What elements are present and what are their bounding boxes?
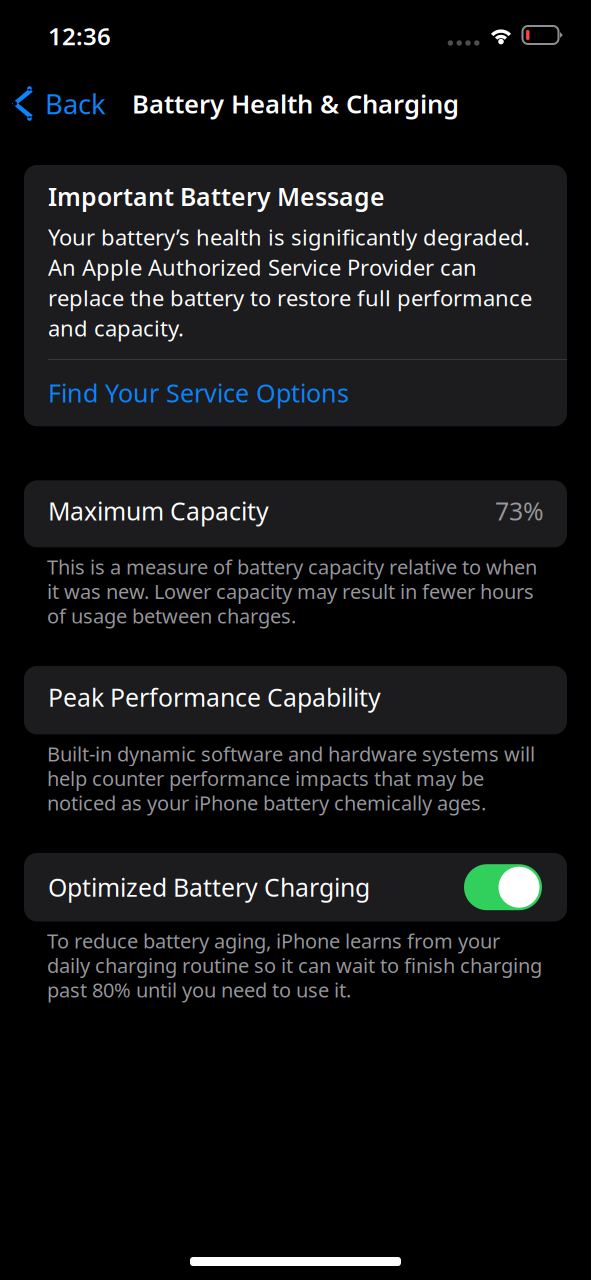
staticText: Peak Performance Capability bbox=[48, 681, 381, 714]
button[interactable]: Optimized Battery Charging bbox=[464, 864, 542, 910]
staticText: Back bbox=[45, 85, 106, 122]
staticText: Maximum Capacity bbox=[48, 494, 269, 527]
staticText: To reduce battery aging, iPhone learns f… bbox=[47, 928, 542, 1002]
staticText: Your battery’s health is significantly d… bbox=[48, 222, 532, 343]
staticText: 12:36 bbox=[48, 20, 111, 52]
button[interactable]: Maximum Capacity bbox=[24, 480, 567, 547]
staticText: Important Battery Message bbox=[48, 180, 385, 213]
staticText: Built-in dynamic software and hardware s… bbox=[47, 741, 535, 815]
staticText: Battery Health & Charging bbox=[132, 86, 459, 120]
staticText: This is a measure of battery capacity re… bbox=[47, 554, 537, 628]
button[interactable]: Peak Performance Capability bbox=[24, 666, 567, 734]
staticText: Optimized Battery Charging bbox=[48, 871, 370, 904]
staticText: 73% bbox=[495, 494, 544, 527]
button[interactable]: Find Your Service Options bbox=[48, 360, 567, 426]
staticText: Find Your Service Options bbox=[48, 376, 349, 409]
button[interactable]: Back bbox=[0, 70, 118, 137]
